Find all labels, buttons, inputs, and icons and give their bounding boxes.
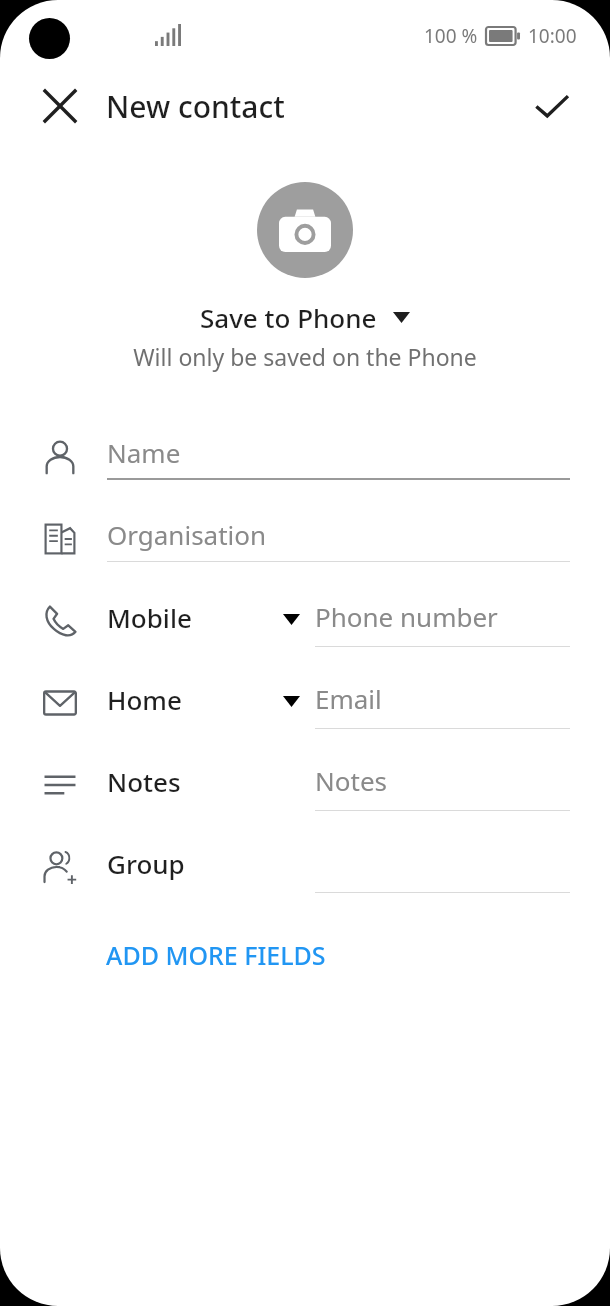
button[interactable]: Add photo: [257, 182, 353, 278]
staticText: Save to Phone: [200, 300, 377, 335]
staticText: Home: [107, 682, 182, 717]
button[interactable]: Save to Phone: [200, 300, 410, 335]
staticText: Notes: [315, 763, 387, 798]
staticText: Mobile: [107, 600, 192, 635]
button[interactable]: Mobile: [0, 580, 610, 662]
staticText: Phone number: [315, 599, 498, 634]
button[interactable]: Notes: [0, 744, 610, 826]
button[interactable]: Name: [0, 416, 610, 498]
staticText: 100 %: [424, 23, 478, 49]
staticText: ADD MORE FIELDS: [106, 938, 326, 972]
staticText: New contact: [106, 86, 285, 127]
staticText: 10:00: [528, 23, 577, 49]
button[interactable]: Close: [24, 72, 96, 140]
button[interactable]: Home: [0, 662, 610, 744]
staticText: Notes: [107, 764, 181, 799]
button[interactable]: Save: [516, 72, 588, 140]
staticText: Name: [107, 435, 181, 470]
staticText: Will only be saved on the Phone: [133, 341, 477, 372]
staticText: Group: [107, 846, 185, 881]
button[interactable]: Organisation: [0, 498, 610, 580]
staticText: Email: [315, 681, 382, 716]
staticText: Organisation: [107, 517, 267, 552]
button[interactable]: ADD MORE FIELDS: [88, 930, 344, 980]
button[interactable]: Group: [0, 826, 610, 908]
